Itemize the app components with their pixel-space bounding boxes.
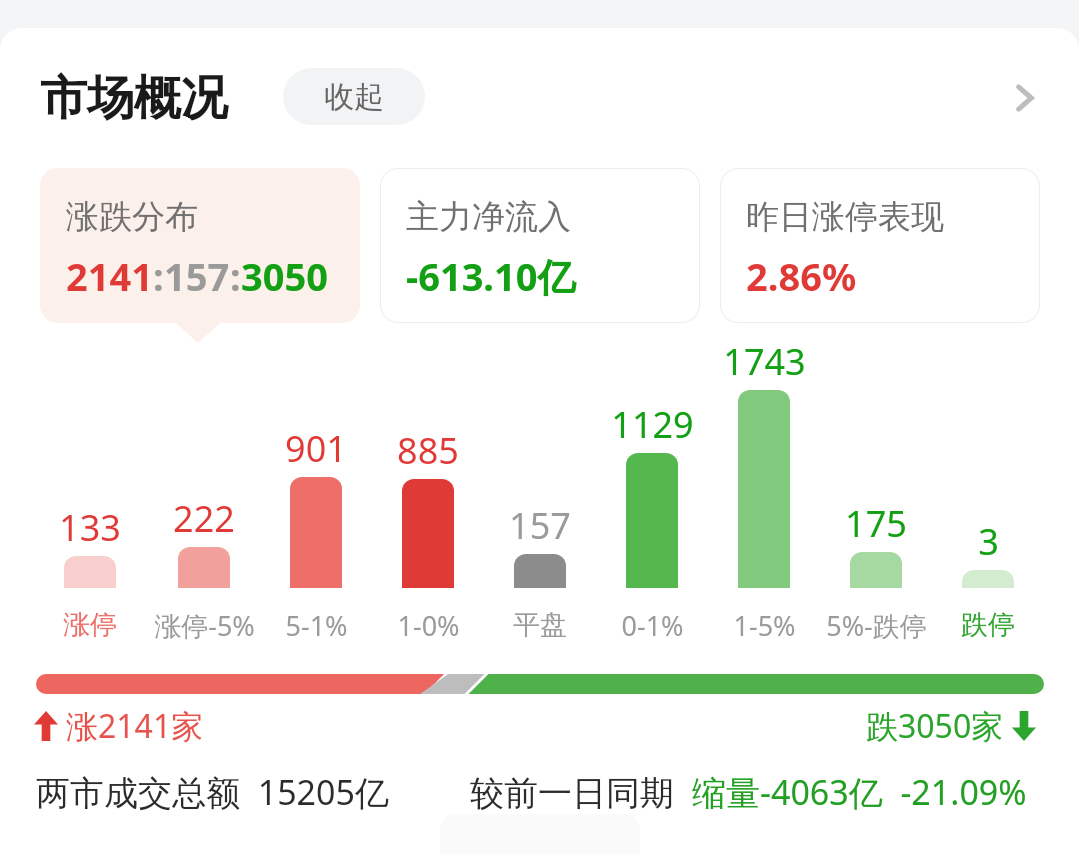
staticText: 3050 <box>241 250 328 302</box>
staticText: 涨2141家 <box>66 704 204 748</box>
staticText: : <box>153 250 164 302</box>
staticText: 5%-跌停 <box>826 607 927 644</box>
staticText: 885 <box>397 426 459 475</box>
staticText: 901 <box>285 424 347 473</box>
button[interactable]: 昨日涨停表现 <box>720 168 1040 323</box>
staticText: 跌停 <box>961 608 1015 642</box>
staticText: 133 <box>59 503 121 552</box>
button[interactable]: 跌3050家 <box>866 704 1036 748</box>
staticText: 2141 <box>66 250 153 302</box>
staticText: 175 <box>845 499 907 548</box>
staticText: 157 <box>164 250 230 302</box>
button[interactable]: 收起 <box>283 68 425 125</box>
staticText: 涨跌分布 <box>66 196 198 238</box>
staticText: 平盘 <box>513 608 567 642</box>
staticText: 157 <box>509 501 571 550</box>
staticText: 3 <box>978 517 999 566</box>
button[interactable]: More <box>985 58 1065 138</box>
staticText: 涨停 <box>63 608 117 642</box>
staticText: 收起 <box>324 78 384 116</box>
staticText: 2.86% <box>746 250 857 302</box>
staticText: 缩量-4063亿 -21.09% <box>692 769 1027 815</box>
staticText: 跌3050家 <box>866 704 1004 748</box>
staticText: 涨停-5% <box>154 607 255 644</box>
staticText: 较前一日同期 <box>470 769 692 815</box>
staticText: 市场概况 <box>40 69 228 128</box>
staticText: 1743 <box>723 337 806 386</box>
staticText: 1-0% <box>397 607 460 644</box>
staticText: -613.10亿 <box>406 250 576 302</box>
button[interactable]: 涨2141家 <box>34 704 204 748</box>
staticText: 1129 <box>611 400 694 449</box>
staticText: 昨日涨停表现 <box>746 196 944 238</box>
staticText: 1-5% <box>733 607 796 644</box>
staticText: 0-1% <box>621 607 684 644</box>
button[interactable]: 涨跌分布 <box>40 168 360 323</box>
staticText: : <box>230 250 241 302</box>
staticText: 5-1% <box>285 607 348 644</box>
button[interactable]: 市场概况 <box>40 60 265 136</box>
staticText: 主力净流入 <box>406 196 571 238</box>
staticText: 两市成交总额 15205亿 <box>36 769 389 815</box>
button[interactable]: 主力净流入 <box>380 168 700 323</box>
staticText: 222 <box>173 494 235 543</box>
